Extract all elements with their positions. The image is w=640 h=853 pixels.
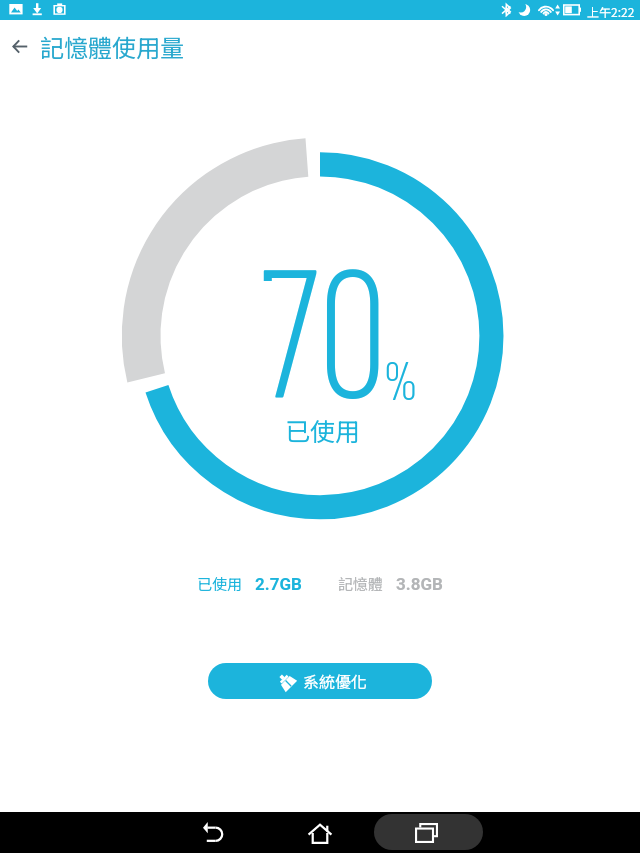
staticText: 已使用	[197, 573, 243, 595]
staticText: 70	[258, 223, 388, 456]
staticText: 記憶體使用量	[40, 29, 184, 64]
staticText: %	[384, 348, 418, 418]
button[interactable]: Back	[193, 812, 233, 853]
staticText: 2.7GB	[255, 574, 302, 594]
button[interactable]: Home	[300, 812, 340, 853]
staticText: 系統優化	[303, 669, 368, 692]
button[interactable]: Back	[0, 20, 40, 72]
staticText: 3.8GB	[396, 574, 443, 594]
staticText: 已使用	[285, 412, 361, 448]
button[interactable]: Recent apps	[374, 814, 483, 850]
staticText: 記憶體	[338, 573, 384, 595]
staticText: 上午2:22	[587, 3, 635, 20]
button[interactable]: 系統優化	[208, 663, 432, 699]
